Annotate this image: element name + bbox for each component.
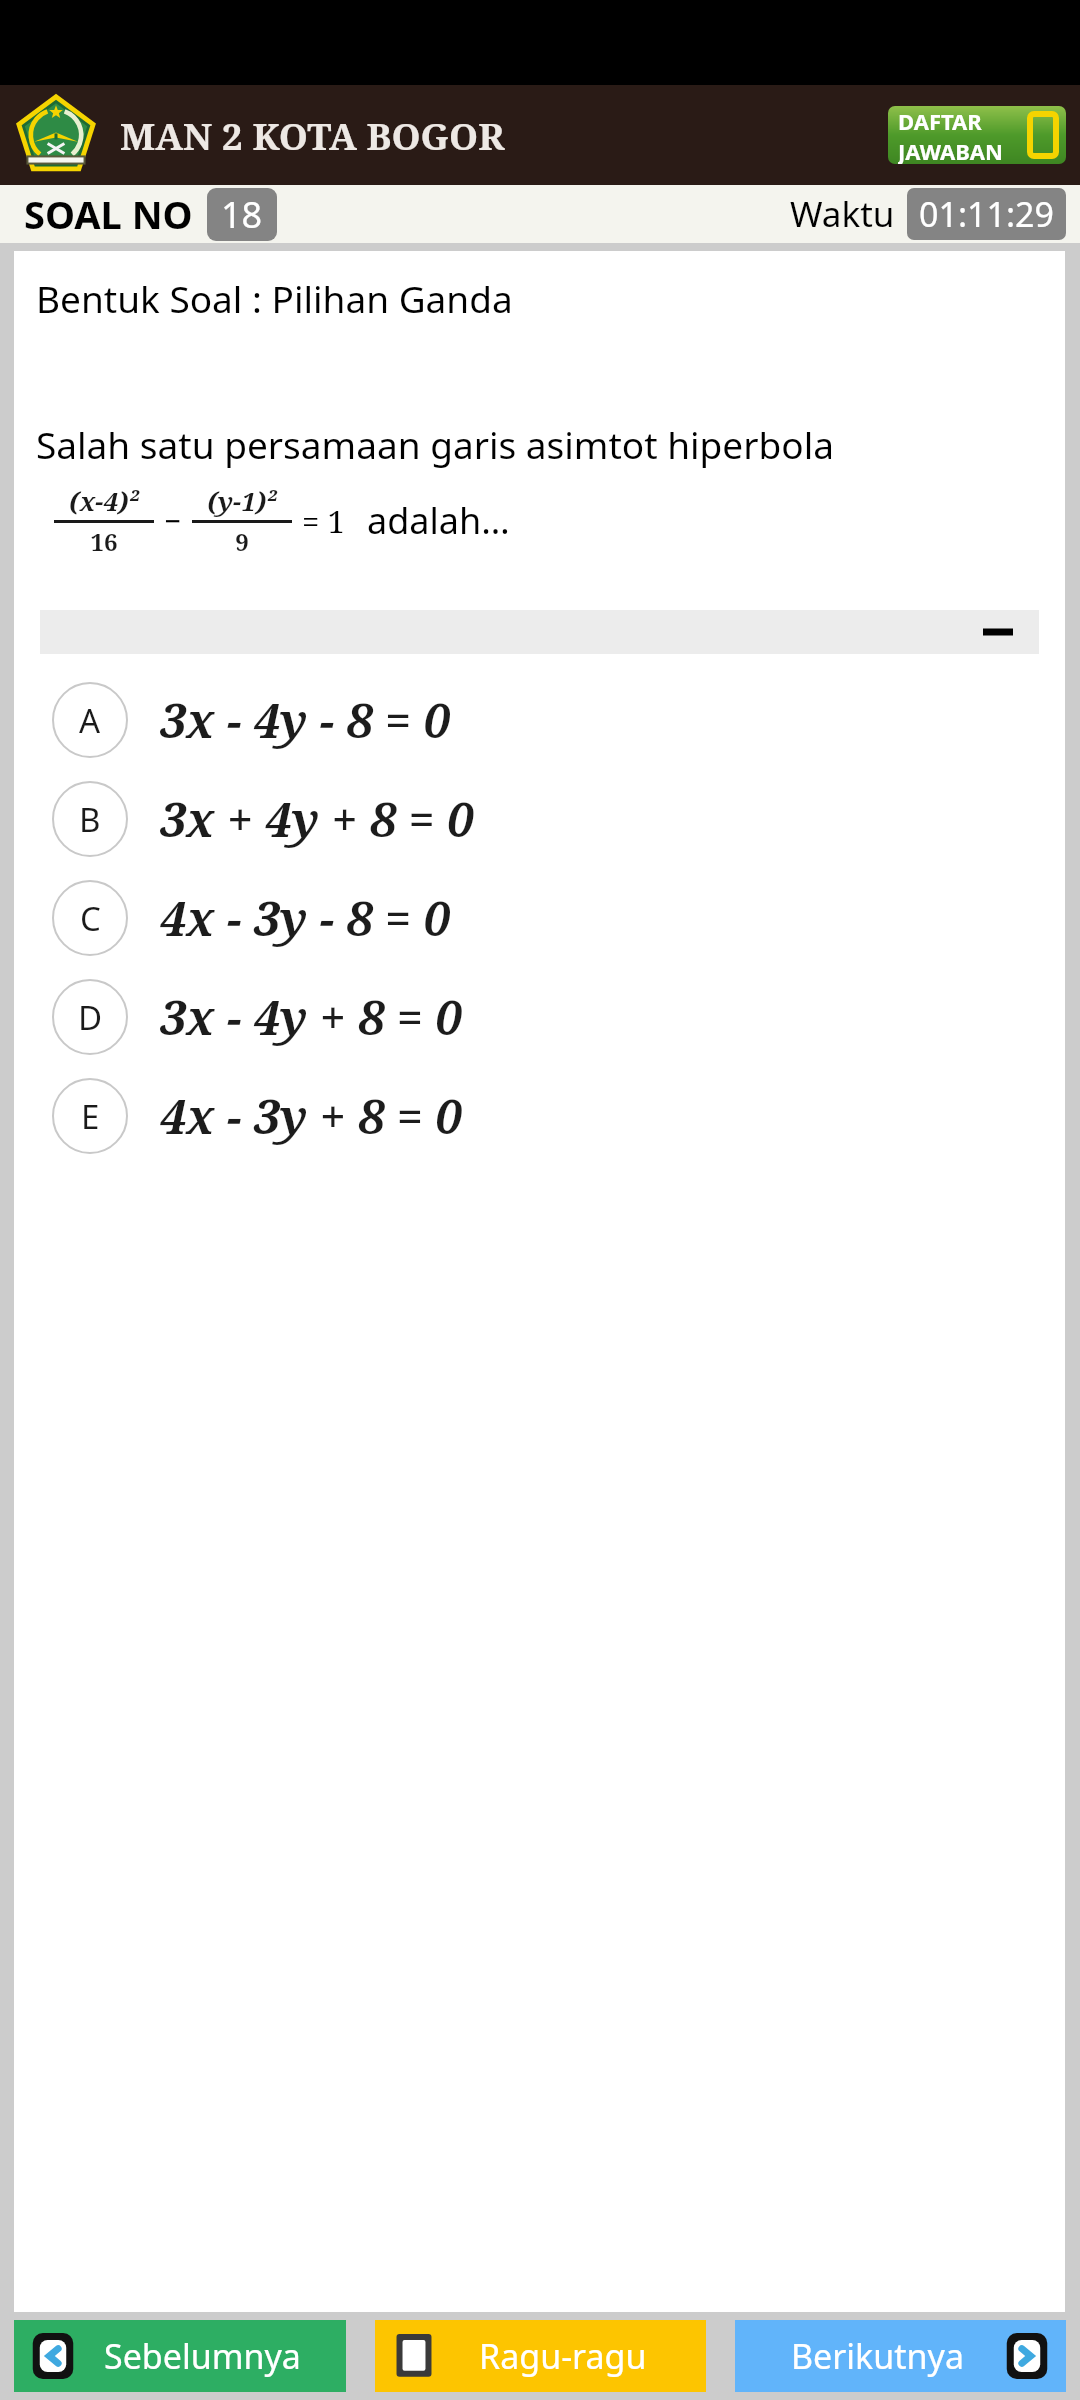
staticText: E — [81, 1094, 100, 1139]
staticText: Bentuk Soal : Pilihan Ganda — [36, 273, 513, 323]
staticText: 3x − 4y + 8 = 0 — [160, 985, 462, 1049]
button[interactable]: Ragu-ragu — [375, 2320, 706, 2392]
staticText: adalah… — [367, 496, 510, 545]
staticText: B — [79, 797, 101, 842]
button[interactable]: B — [14, 769, 1065, 868]
staticText: − — [164, 500, 182, 541]
staticText: Berikutnya — [791, 2333, 964, 2379]
staticText: 18 — [221, 190, 263, 239]
staticText: MAN 2 KOTA BOGOR — [120, 110, 505, 160]
staticText: 4x − 3y − 8 = 0 — [160, 886, 450, 950]
staticText: 16 — [90, 525, 118, 558]
button[interactable]: C — [14, 868, 1065, 967]
button[interactable]: D — [14, 967, 1065, 1066]
staticText: 01:11:29 — [919, 191, 1054, 237]
staticText: (x−4)² — [69, 483, 139, 518]
staticText: Ragu-ragu — [479, 2333, 647, 2379]
staticText: 3x − 4y − 8 = 0 — [160, 688, 450, 752]
staticText: D — [78, 995, 103, 1040]
staticText: Sebelumnya — [104, 2333, 301, 2379]
staticText: 3x + 4y + 8 = 0 — [160, 787, 474, 851]
staticText: SOAL NO — [24, 188, 193, 240]
button[interactable]: Berikutnya — [735, 2320, 1066, 2392]
button[interactable]: Sebelumnya — [14, 2320, 346, 2392]
staticText: C — [80, 896, 101, 941]
button[interactable]: E — [14, 1066, 1065, 1165]
staticText: JAWABAN — [898, 136, 1003, 164]
staticText: DAFTAR — [898, 106, 982, 136]
staticText: = 1 — [302, 500, 345, 542]
staticText: (y−1)² — [207, 483, 277, 518]
staticText: 9 — [235, 525, 249, 558]
staticText: A — [79, 698, 101, 743]
staticText: Salah satu persamaan garis asimtot hiper… — [36, 419, 834, 469]
button[interactable]: A — [14, 670, 1065, 769]
staticText: 4x − 3y + 8 = 0 — [160, 1084, 462, 1148]
staticText: Waktu — [790, 190, 895, 238]
button[interactable]: Daftar Jawaban — [888, 106, 1066, 164]
button[interactable]: Collapse — [40, 610, 1039, 654]
